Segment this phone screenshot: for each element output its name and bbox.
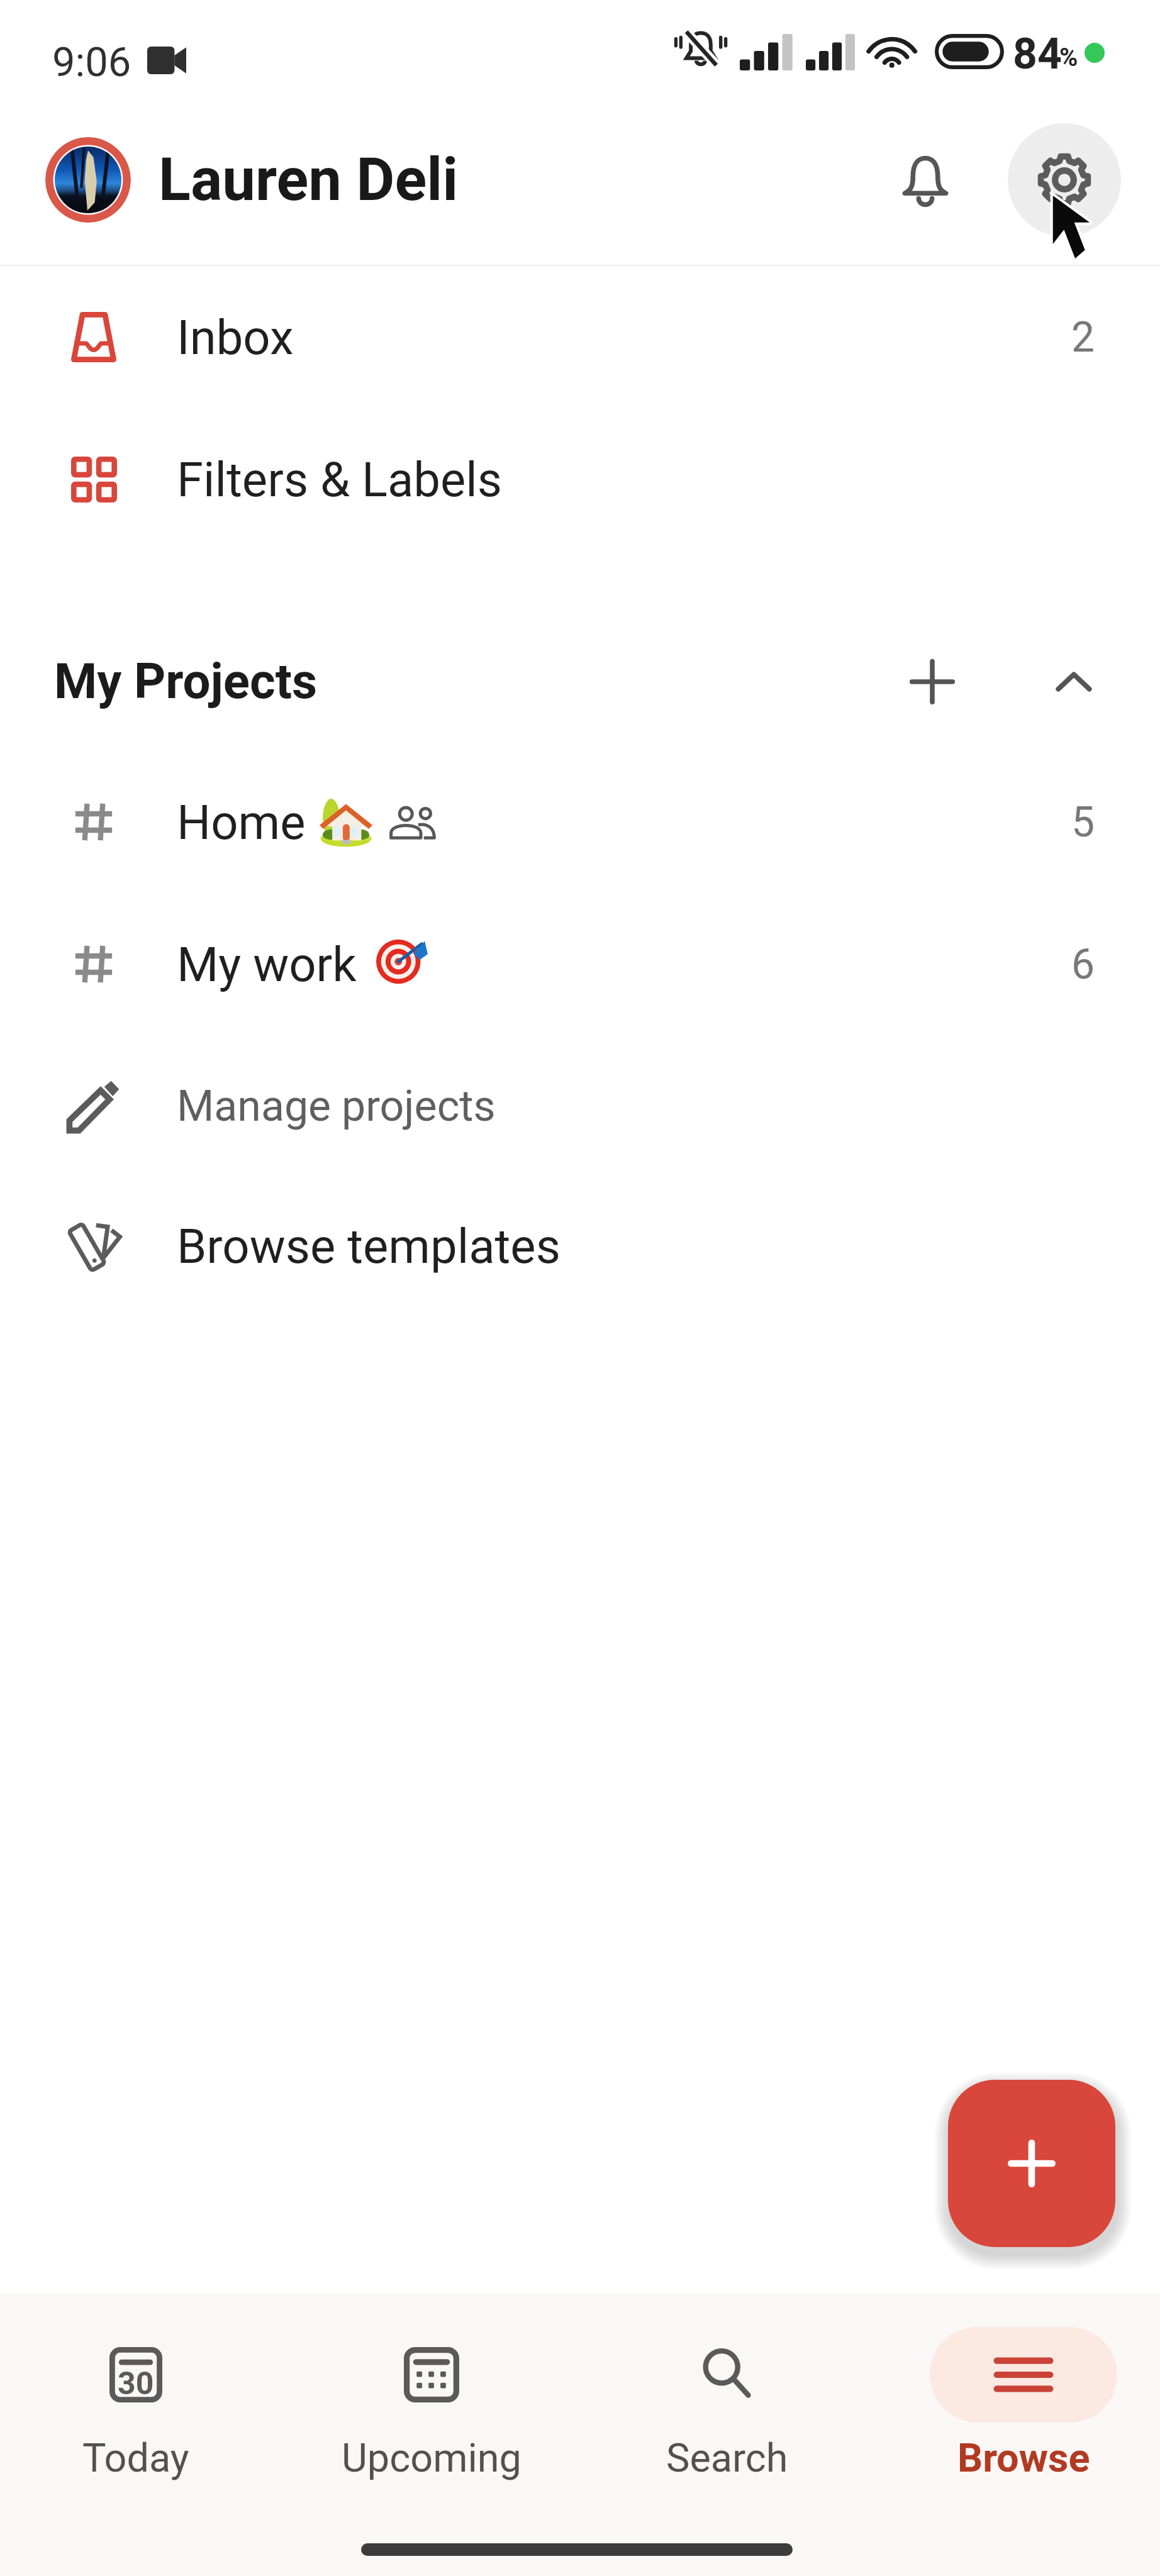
staticText: My work [177,936,357,992]
button[interactable]: Add task [948,2080,1115,2247]
staticText: Upcoming [342,2435,521,2482]
staticText: Today [82,2435,189,2482]
staticText: % [1059,43,1078,72]
button[interactable]: Browse templates [0,1175,1160,1317]
button[interactable]: Notifications [869,123,982,236]
staticText: Browse [957,2435,1090,2482]
button[interactable]: Upcoming [337,2327,526,2482]
button[interactable]: My work [0,893,1160,1035]
staticText: Manage projects [177,1081,496,1131]
button[interactable]: Inbox [0,266,1160,408]
button[interactable]: Filters & Labels [0,408,1160,550]
button[interactable]: Home [0,751,1160,893]
staticText: Browse templates [177,1218,560,1274]
button[interactable]: Profile [45,137,131,223]
staticText: Inbox [177,309,294,365]
staticText: 6 [1071,940,1095,989]
staticText: Search [666,2435,788,2482]
button[interactable]: Search [633,2327,822,2482]
staticText: Lauren Deli [159,145,459,214]
staticText: My Projects [54,653,318,710]
button[interactable]: Browse [929,2327,1118,2482]
staticText: 2 [1071,313,1095,362]
staticText: Home [177,794,306,850]
button[interactable]: Manage projects [0,1035,1160,1177]
button[interactable]: Add project [888,638,976,726]
staticText: 9:06 [52,38,131,86]
staticText: 84 [1013,29,1062,79]
staticText: Filters & Labels [177,452,503,508]
button[interactable]: 30 [42,2327,230,2482]
button[interactable]: Collapse section [1030,638,1118,726]
staticText: 30 [118,2365,154,2402]
staticText: 5 [1071,798,1095,847]
button[interactable]: Settings [1008,123,1121,236]
